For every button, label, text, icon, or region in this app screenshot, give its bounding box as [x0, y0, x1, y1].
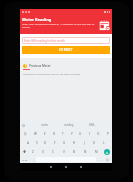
button[interactable]: C: [48, 147, 58, 156]
staticText: ☺: [106, 158, 109, 161]
staticText: reading: [64, 123, 74, 127]
button[interactable]: Y: [67, 129, 76, 138]
staticText: D: [44, 141, 47, 145]
other: Calendar: [99, 20, 111, 31]
staticText: SUBMIT: [59, 48, 73, 52]
staticText: J: [84, 141, 85, 145]
button[interactable]: K: [89, 138, 99, 147]
button[interactable]: Recents: [79, 165, 83, 169]
staticText: meter: [41, 123, 49, 127]
staticText: K: [93, 141, 95, 145]
button[interactable]: T: [58, 129, 67, 138]
staticText: G: [63, 141, 66, 145]
staticText: Z: [32, 150, 34, 154]
button[interactable]: Emoji: [102, 156, 112, 163]
staticText: P: [107, 132, 109, 136]
button[interactable]: N: [80, 147, 91, 156]
button[interactable]: D: [41, 138, 50, 147]
button[interactable]: ,: [30, 156, 36, 163]
staticText: H: [73, 141, 76, 145]
button[interactable]: V: [58, 147, 69, 156]
staticText: C: [52, 150, 54, 154]
staticText: T: [62, 132, 64, 136]
button[interactable]: Enter: [102, 147, 112, 156]
button[interactable]: Back: [49, 165, 53, 169]
button[interactable]: L: [99, 138, 109, 147]
staticText: X: [42, 150, 44, 154]
button[interactable]: W: [30, 129, 40, 138]
staticText: Verification of the above has not yet be…: [23, 72, 81, 75]
staticText: Meter Reading: [22, 17, 52, 22]
button[interactable]: E: [40, 129, 49, 138]
staticText: W: [34, 132, 37, 136]
button[interactable]: S: [32, 138, 41, 147]
staticText: E: [44, 132, 46, 136]
button[interactable]: U: [76, 129, 85, 138]
staticText: Enter your generation meterNo - 7 instal…: [22, 22, 98, 28]
staticText: I: [89, 132, 91, 136]
button[interactable]: Shift: [20, 147, 28, 156]
staticText: B: [73, 150, 76, 154]
staticText: S: [36, 141, 38, 145]
button[interactable]: J: [79, 138, 89, 147]
staticText: .: [99, 158, 100, 162]
staticText: Q: [24, 132, 27, 136]
staticText: ?123: [22, 158, 28, 161]
staticText: ↵: [106, 151, 109, 154]
button[interactable]: Q: [20, 129, 30, 138]
button[interactable]: Z: [28, 147, 38, 156]
staticText: Previous Meter: [29, 64, 51, 68]
staticText: U: [79, 132, 82, 136]
button[interactable]: P: [103, 129, 112, 138]
staticText: F: [54, 141, 56, 145]
button[interactable]: X: [38, 147, 48, 156]
button[interactable]: I: [85, 129, 94, 138]
staticText: O: [97, 132, 100, 136]
staticText: kWh: [89, 123, 95, 127]
staticText: N: [84, 150, 87, 154]
staticText: ,: [33, 158, 34, 162]
button[interactable]: Home: [64, 165, 68, 169]
button[interactable]: M: [91, 147, 102, 156]
button[interactable]: A: [23, 138, 32, 147]
button[interactable]: G: [59, 138, 69, 147]
button[interactable]: F: [50, 138, 59, 147]
staticText: R: [53, 132, 55, 136]
staticText: !: [25, 64, 26, 68]
staticText: Enter kWh reading for this month: [24, 39, 65, 43]
staticText: M: [95, 150, 98, 154]
button[interactable]: SUBMIT: [22, 46, 110, 54]
button[interactable]: B: [69, 147, 80, 156]
staticText: A: [27, 141, 29, 145]
staticText: L: [103, 141, 105, 145]
button[interactable]: O: [94, 129, 103, 138]
staticText: V: [63, 150, 65, 154]
button[interactable]: R: [49, 129, 58, 138]
button[interactable]: H: [69, 138, 79, 147]
staticText: Y: [71, 132, 73, 136]
button[interactable]: ?123: [20, 156, 30, 163]
